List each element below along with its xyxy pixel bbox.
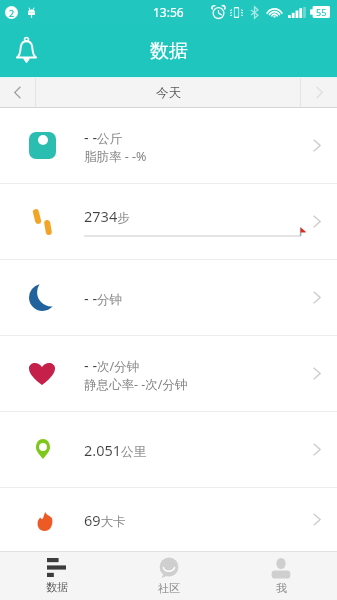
staticText: 13:56 xyxy=(153,4,184,20)
staticText: 脂肪率 - -% xyxy=(84,148,147,165)
staticText: 数据 xyxy=(150,39,188,63)
staticText: - -公斤 xyxy=(84,127,123,147)
staticText: - -分钟 xyxy=(84,288,123,308)
staticText: 静息心率- -次/分钟 xyxy=(84,376,188,393)
staticText: 2 xyxy=(9,7,15,19)
staticText: 我 xyxy=(276,581,287,595)
button[interactable]: 数据 xyxy=(0,552,113,600)
staticText: 社区 xyxy=(158,581,180,595)
staticText: 2734步 xyxy=(84,206,130,226)
staticText: 今天 xyxy=(156,85,181,101)
button[interactable]: - -分钟 xyxy=(0,260,337,335)
button[interactable]: Next day xyxy=(301,77,337,108)
staticText: 2.051公里 xyxy=(84,440,147,460)
button[interactable]: Notifications xyxy=(0,24,53,77)
button[interactable]: 2.051公里 xyxy=(0,412,337,487)
staticText: - -次/分钟 xyxy=(84,355,140,375)
staticText: 69大卡 xyxy=(84,510,126,530)
button[interactable]: - -公斤 xyxy=(0,108,337,183)
staticText: 数据 xyxy=(46,580,68,594)
button[interactable]: - -次/分钟 xyxy=(0,336,337,411)
button[interactable]: 69大卡 xyxy=(0,488,337,551)
button[interactable]: 2734步 xyxy=(0,184,337,259)
button[interactable]: 今天 xyxy=(36,77,300,108)
button[interactable]: 我 xyxy=(225,552,337,600)
button[interactable]: Previous day xyxy=(0,77,35,108)
button[interactable]: 社区 xyxy=(113,552,225,600)
staticText: 55 xyxy=(316,6,327,18)
